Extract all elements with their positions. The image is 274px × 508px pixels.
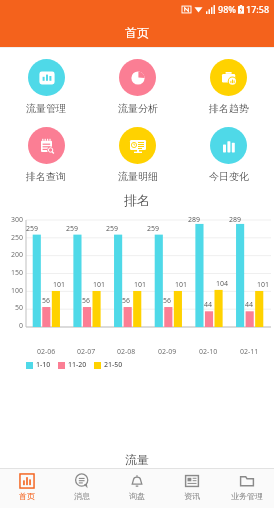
staticText: 11-20: [68, 360, 87, 370]
staticText: 流量明细: [118, 170, 158, 183]
staticText: 流量管理: [26, 102, 66, 115]
staticText: 流量: [0, 452, 274, 467]
staticText: 150: [11, 268, 24, 278]
staticText: 首页: [125, 25, 149, 40]
button[interactable]: 今日变化: [183, 124, 274, 186]
staticText: 259: [106, 224, 119, 234]
button[interactable]: 业务管理: [219, 469, 274, 508]
staticText: 56: [82, 296, 91, 306]
staticText: 21-50: [104, 360, 123, 370]
staticText: 首页: [19, 491, 35, 501]
staticText: 101: [175, 280, 188, 290]
staticText: 101: [53, 280, 66, 290]
staticText: 02-11: [240, 347, 259, 357]
staticText: 200: [11, 250, 24, 260]
button[interactable]: 流量分析: [92, 56, 183, 118]
button[interactable]: 消息: [54, 469, 109, 508]
staticText: 259: [66, 224, 79, 234]
staticText: 消息: [74, 491, 90, 501]
staticText: 300: [11, 215, 24, 225]
button[interactable]: 排名趋势: [183, 56, 274, 118]
staticText: 101: [257, 280, 270, 290]
staticText: 0: [19, 321, 24, 331]
staticText: 流量分析: [118, 102, 158, 115]
staticText: 02-10: [199, 347, 218, 357]
staticText: 50: [15, 303, 24, 313]
staticText: 17:58: [246, 3, 270, 15]
staticText: 排名查询: [26, 170, 66, 183]
staticText: 289: [229, 215, 242, 223]
button[interactable]: 首页: [0, 469, 54, 508]
staticText: 资讯: [184, 491, 200, 501]
staticText: 02-08: [117, 347, 136, 357]
staticText: 56: [163, 296, 172, 306]
staticText: 询盘: [129, 491, 145, 501]
button[interactable]: 排名查询: [0, 124, 92, 186]
staticText: 02-06: [37, 347, 56, 357]
staticText: 02-09: [158, 347, 177, 357]
staticText: 100: [11, 286, 24, 296]
staticText: 今日变化: [209, 170, 249, 183]
staticText: 101: [93, 280, 106, 290]
button[interactable]: 流量管理: [0, 56, 92, 118]
button[interactable]: 询盘: [109, 469, 164, 508]
staticText: 56: [122, 296, 131, 306]
staticText: 44: [245, 300, 254, 310]
staticText: 98%: [218, 3, 236, 15]
staticText: 44: [204, 300, 213, 310]
staticText: 02-07: [77, 347, 96, 357]
staticText: 1-10: [36, 360, 51, 370]
button[interactable]: 流量明细: [92, 124, 183, 186]
staticText: 业务管理: [231, 491, 263, 501]
staticText: 250: [11, 233, 24, 243]
staticText: 101: [134, 280, 147, 290]
staticText: 259: [26, 224, 39, 234]
button[interactable]: 资讯: [164, 469, 219, 508]
staticText: 排名: [0, 192, 274, 208]
staticText: 104: [216, 279, 229, 289]
staticText: 259: [147, 224, 160, 234]
staticText: 56: [42, 296, 51, 306]
staticText: 排名趋势: [209, 102, 249, 115]
staticText: 289: [188, 215, 201, 223]
